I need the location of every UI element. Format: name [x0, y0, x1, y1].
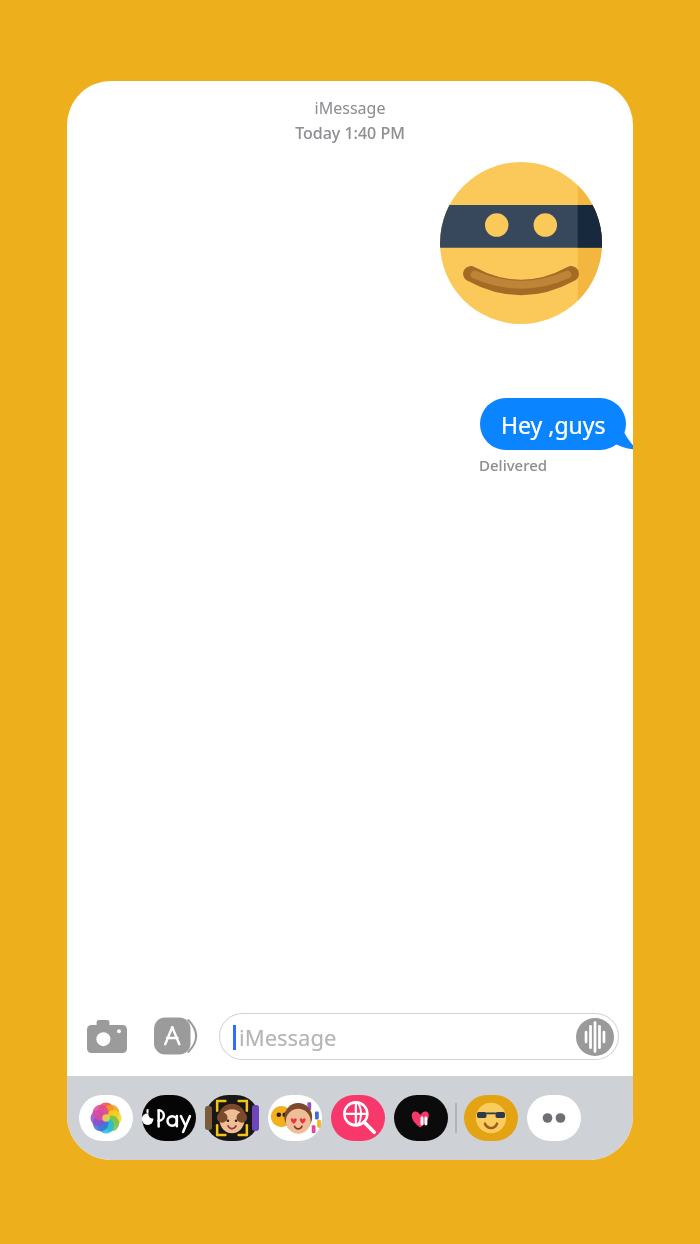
button[interactable]: Camera [81, 1010, 133, 1062]
button[interactable]: iMessage [219, 1013, 619, 1060]
button[interactable]: Emoji [463, 1092, 519, 1144]
button[interactable]: Apple Pay [141, 1092, 197, 1144]
staticText: Today 1:40 PM [67, 122, 633, 144]
button[interactable]: Images [330, 1092, 386, 1144]
button[interactable]: Memoji camera [204, 1092, 260, 1144]
staticText: Hey ,guys [501, 409, 606, 440]
button[interactable]: Photos [78, 1092, 134, 1144]
button[interactable]: Record audio [576, 1018, 614, 1056]
staticText: iMessage [239, 1022, 337, 1052]
button[interactable]: App Store [153, 1010, 205, 1062]
staticText: iMessage [67, 97, 633, 119]
button[interactable]: More [526, 1092, 582, 1144]
button[interactable]: Digital Touch [393, 1092, 449, 1144]
button[interactable]: Memoji stickers [267, 1092, 323, 1144]
button[interactable]: Hey ,guys [480, 398, 633, 450]
staticText: Delivered [479, 455, 548, 475]
